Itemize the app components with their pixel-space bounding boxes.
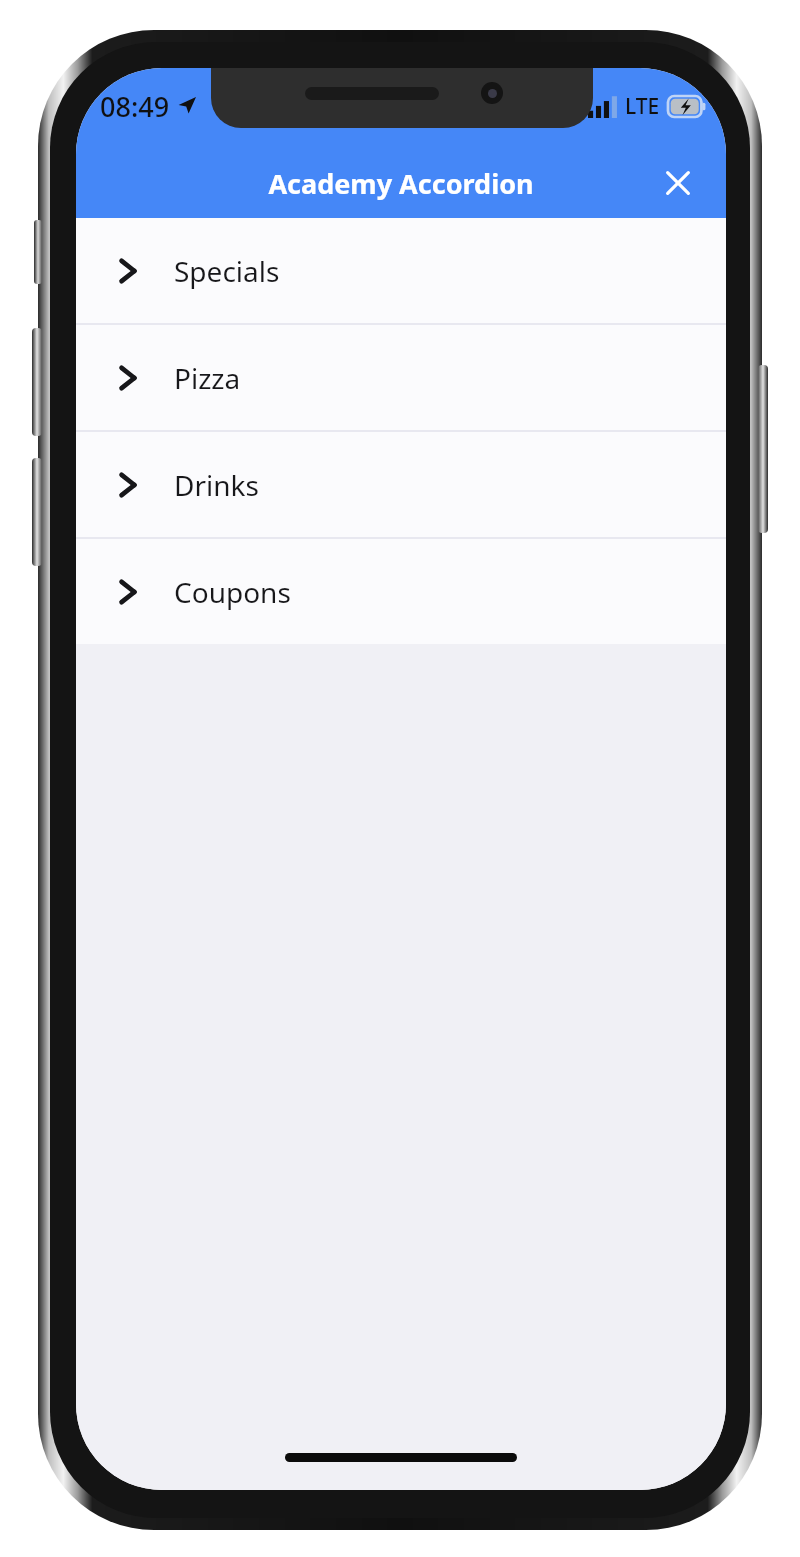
staticText: Specials <box>174 252 280 290</box>
staticText: Pizza <box>174 359 241 397</box>
staticText: LTE <box>625 92 660 121</box>
button[interactable]: Drinks <box>76 432 726 537</box>
button[interactable]: Close <box>650 155 706 211</box>
button[interactable]: Coupons <box>76 539 726 644</box>
button[interactable]: Pizza <box>76 325 726 430</box>
button[interactable]: Specials <box>76 218 726 323</box>
staticText: Coupons <box>174 573 291 611</box>
staticText: 08:49 <box>100 88 170 125</box>
staticText: Drinks <box>174 466 259 504</box>
staticText: Academy Accordion <box>268 165 534 202</box>
